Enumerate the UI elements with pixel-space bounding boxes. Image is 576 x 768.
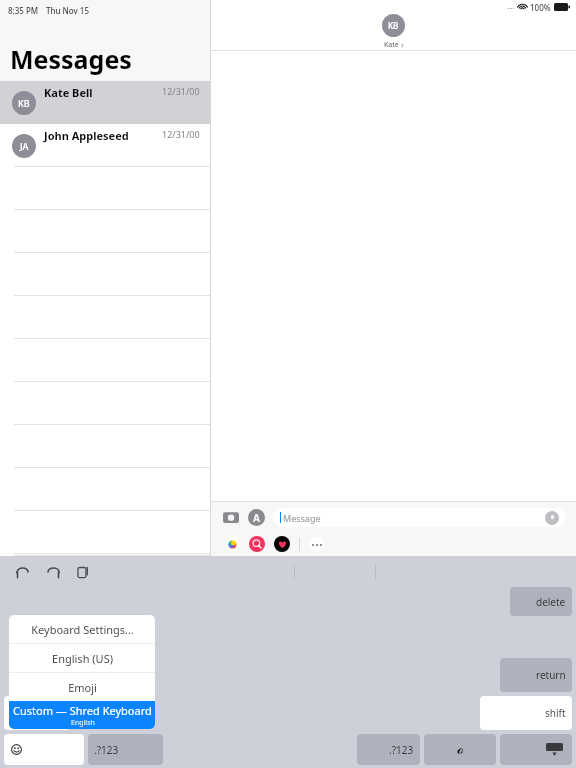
button[interactable]: Kate (382, 14, 405, 37)
staticText: return (536, 668, 566, 682)
staticText: English (US) (52, 651, 113, 666)
button[interactable]: Digital Touch (274, 536, 290, 552)
staticText: › (401, 39, 404, 50)
staticText: .... (507, 2, 515, 12)
button[interactable]: Photos (225, 537, 240, 552)
staticText: Thu Nov 15 (46, 5, 89, 16)
button[interactable]: Emoji (9, 673, 155, 701)
staticText: English (71, 718, 95, 728)
staticText: John Appleseed (44, 128, 129, 143)
staticText: .?123 (94, 743, 119, 757)
button[interactable]: shift (480, 696, 572, 730)
button[interactable]: Camera (221, 507, 241, 527)
button[interactable]: Hide keyboard (500, 734, 572, 765)
button[interactable]: Keyboard Settings… (9, 615, 155, 643)
button[interactable]: KB (0, 81, 210, 124)
button[interactable]: delete (510, 587, 572, 616)
button[interactable]: App Store (248, 509, 265, 526)
button[interactable]: More (309, 537, 324, 552)
staticText: KB (18, 97, 30, 109)
button[interactable]: Undo (12, 562, 32, 582)
button[interactable]: English (US) (9, 644, 155, 672)
button[interactable]: Images (249, 536, 265, 552)
staticText: shift (545, 706, 566, 720)
button[interactable]: Custom — Shred Keyboard (9, 701, 155, 729)
staticText: .?123 (389, 743, 414, 757)
button[interactable]: .?123 (357, 734, 420, 765)
staticText: 12/31/00 (162, 128, 200, 140)
button[interactable]: JA (0, 124, 210, 167)
button[interactable]: return (500, 658, 572, 692)
button[interactable]: Paste (74, 562, 94, 582)
staticText: Custom — Shred Keyboard (13, 703, 152, 718)
staticText: Message (283, 512, 321, 524)
staticText: Keyboard Settings… (31, 622, 134, 637)
button[interactable]: key (4, 734, 84, 765)
staticText: A (253, 511, 260, 525)
staticText: Kate Bell (44, 85, 93, 100)
staticText: JA (20, 140, 29, 152)
button[interactable]: Redo (43, 562, 63, 582)
staticText: Kate (384, 40, 399, 50)
button[interactable] (4, 696, 70, 730)
staticText: Messages (10, 42, 132, 76)
staticText: 8:35 PM (8, 5, 39, 16)
button[interactable]: Message (273, 508, 566, 527)
staticText: KB (388, 20, 399, 31)
staticText: Emoji (68, 680, 97, 695)
staticText: delete (536, 595, 566, 609)
staticText: 12/31/00 (162, 85, 200, 97)
button[interactable]: .?123 (88, 734, 163, 765)
staticText: 100% (530, 2, 551, 13)
button[interactable]: Handwriting (424, 734, 496, 765)
staticText: 𝓸 (457, 742, 464, 757)
